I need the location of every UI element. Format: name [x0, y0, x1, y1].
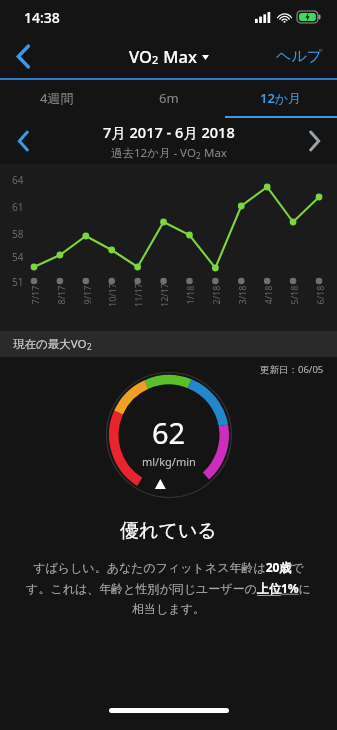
button[interactable]: Back	[0, 34, 46, 78]
staticText: 8/17	[54, 285, 66, 304]
staticText: 61	[12, 200, 24, 214]
staticText: 9/17	[80, 285, 92, 304]
staticText: ヘルプ	[276, 47, 323, 66]
button[interactable]: VO	[129, 45, 209, 67]
staticText: 過去12か月 - VO	[111, 145, 196, 161]
staticText: 62	[152, 413, 186, 452]
staticText: 7月 2017 - 6月 2018	[103, 122, 235, 142]
staticText: 3/18	[235, 285, 247, 304]
staticText: 10/17	[106, 283, 118, 307]
staticText: 4週間	[40, 89, 74, 107]
staticText: 51	[12, 275, 24, 289]
button[interactable]: 4週間	[0, 80, 113, 116]
staticText: ml/kg/min	[142, 454, 196, 469]
staticText: 58	[12, 227, 24, 241]
staticText: 6m	[159, 89, 179, 107]
staticText: 6/18	[313, 285, 325, 304]
staticText: 11/17	[132, 283, 144, 307]
button[interactable]: Previous period	[0, 118, 46, 164]
staticText: 1/18	[183, 285, 195, 304]
staticText: 2/18	[209, 285, 221, 304]
staticText: 12/17	[158, 283, 170, 307]
button[interactable]: ヘルプ	[262, 34, 337, 78]
staticText: 4/18	[261, 285, 273, 304]
staticText: 2	[152, 52, 159, 67]
button[interactable]: Next period	[291, 118, 337, 164]
button[interactable]: 12か月	[225, 80, 337, 116]
staticText: すばらしい。あなたのフィットネス年齢は20歳です。これは、年齢と性別が同じユーザ…	[26, 559, 311, 616]
staticText: 14:38	[24, 8, 60, 27]
staticText: 優れている	[120, 519, 217, 543]
staticText: 64	[12, 173, 24, 187]
staticText: 2	[87, 341, 92, 352]
staticText: 5/18	[287, 285, 299, 304]
staticText: VO	[129, 45, 152, 67]
staticText: 7/17	[28, 285, 40, 304]
staticText: 12か月	[260, 89, 302, 107]
staticText: Max	[201, 145, 227, 161]
staticText: 現在の最大VO	[13, 336, 87, 352]
staticText: 2	[196, 150, 201, 161]
staticText: 54	[12, 250, 24, 264]
staticText: Max	[159, 45, 197, 67]
staticText: 更新日：06/05	[260, 363, 324, 376]
button[interactable]: 6m	[113, 80, 225, 116]
